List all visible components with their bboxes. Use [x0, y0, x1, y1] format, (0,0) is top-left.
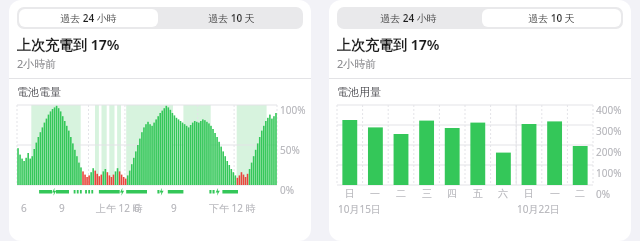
- staticText: 二: [396, 187, 406, 200]
- staticText: 一: [370, 187, 380, 200]
- staticText: 2小時前: [17, 56, 57, 71]
- button[interactable]: 過去 24 小時: [19, 9, 158, 27]
- staticText: 9: [171, 201, 177, 215]
- staticText: 6: [21, 201, 27, 215]
- staticText: 五: [473, 187, 483, 200]
- staticText: 0%: [280, 183, 295, 197]
- staticText: 六: [498, 187, 508, 200]
- staticText: 50%: [280, 143, 300, 157]
- staticText: 10月15日: [338, 202, 381, 216]
- button[interactable]: 過去 10 天: [162, 9, 301, 27]
- staticText: 一: [550, 187, 560, 200]
- staticText: 上次充電到 17%: [337, 35, 440, 54]
- staticText: 2小時前: [337, 56, 377, 71]
- staticText: 電池電量: [17, 85, 61, 99]
- button[interactable]: 過去 10 天: [482, 9, 621, 27]
- staticText: 日: [524, 187, 534, 200]
- staticText: 二: [575, 187, 585, 200]
- staticText: 過去 24 小時: [380, 11, 437, 25]
- staticText: 過去 10 天: [528, 11, 575, 25]
- staticText: 6: [134, 201, 140, 215]
- staticText: 300%: [596, 124, 622, 138]
- staticText: 過去 10 天: [208, 11, 255, 25]
- staticText: 日: [345, 187, 355, 200]
- staticText: 100%: [596, 166, 622, 180]
- staticText: 9: [59, 201, 65, 215]
- button[interactable]: 過去 24 小時: [339, 9, 478, 27]
- staticText: 100%: [280, 103, 306, 117]
- staticText: 上午 12 時: [96, 201, 143, 215]
- staticText: 10月22日: [517, 202, 560, 216]
- staticText: 下午 12 時: [209, 201, 256, 215]
- staticText: 0%: [596, 187, 611, 201]
- staticText: 上次充電到 17%: [17, 35, 120, 54]
- staticText: 四: [447, 187, 457, 200]
- staticText: 電池用量: [337, 85, 381, 99]
- staticText: 過去 24 小時: [60, 11, 117, 25]
- staticText: 200%: [596, 145, 622, 159]
- staticText: 400%: [596, 103, 622, 117]
- staticText: 三: [422, 187, 432, 200]
